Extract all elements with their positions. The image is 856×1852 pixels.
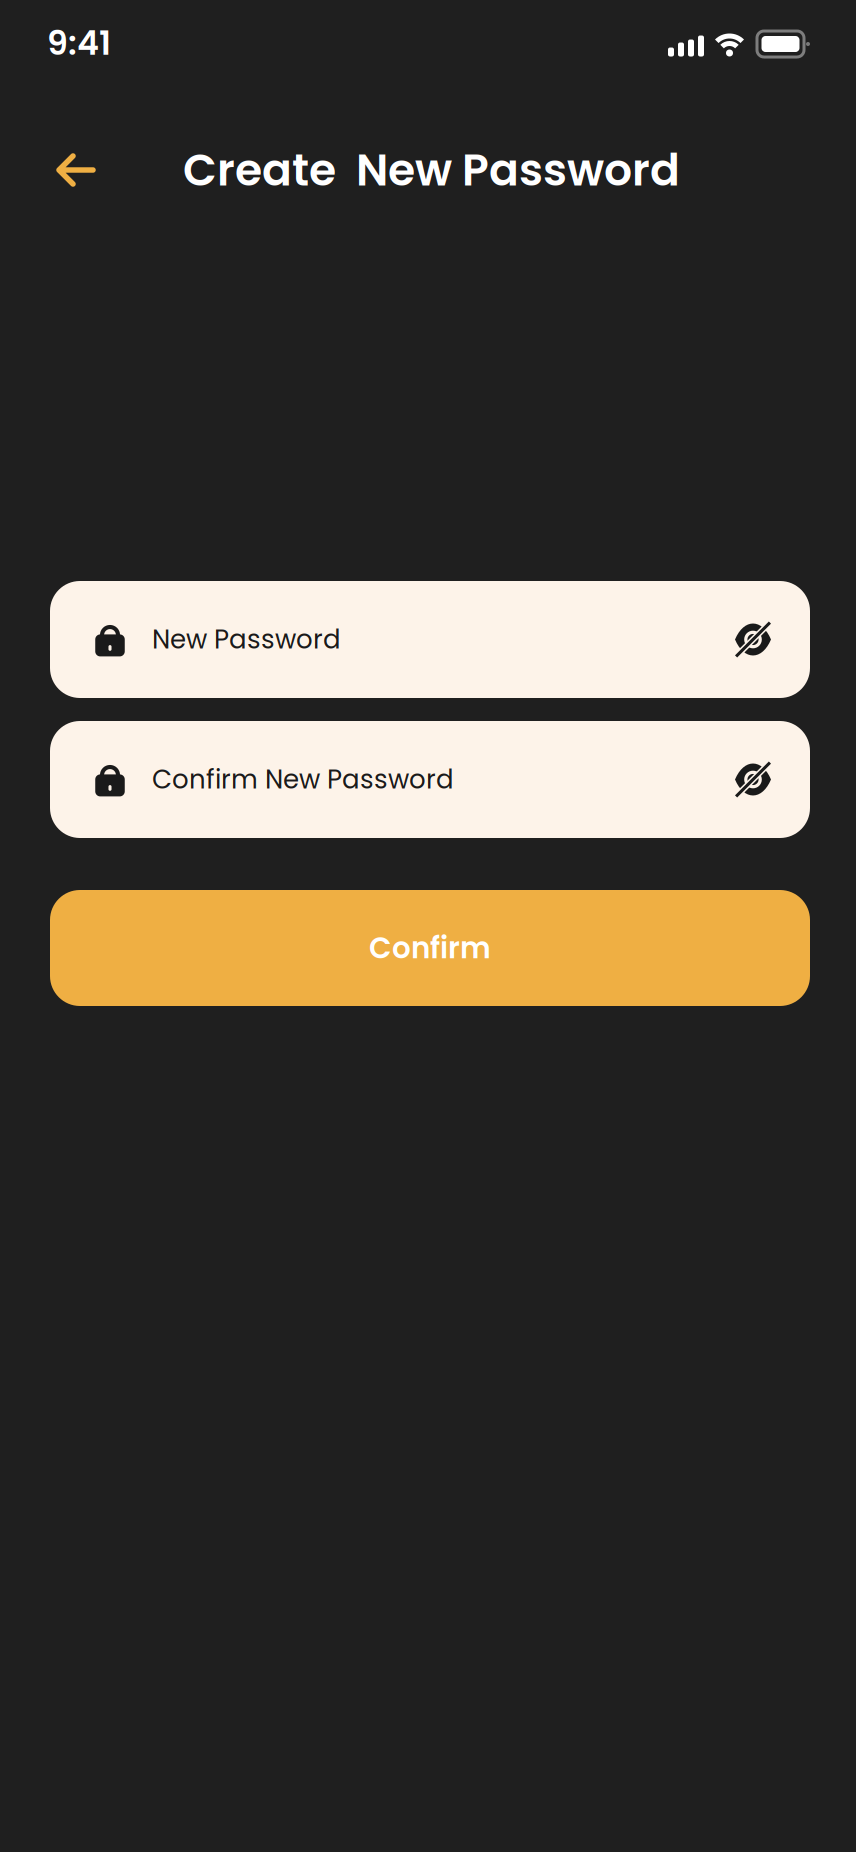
button[interactable]: Show New Password	[735, 581, 810, 698]
button[interactable]: Confirm	[50, 890, 810, 1006]
staticText: Confirm	[369, 927, 491, 969]
staticText: New Password	[152, 621, 341, 658]
button[interactable]: Show Confirm New Password	[735, 721, 810, 838]
button[interactable]: New Password	[50, 581, 810, 698]
button[interactable]: Back	[34, 131, 118, 209]
button[interactable]: Confirm New Password	[50, 721, 810, 838]
staticText: Create New Password	[183, 139, 680, 201]
staticText: 9:41	[47, 20, 111, 66]
staticText: Confirm New Password	[152, 761, 454, 798]
